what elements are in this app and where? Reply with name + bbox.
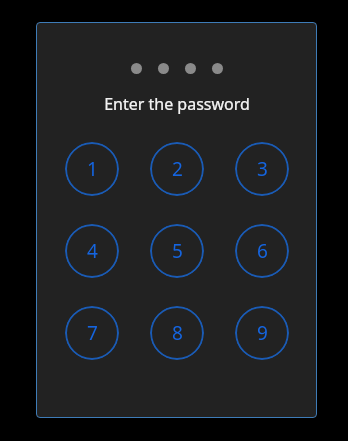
button[interactable]: 9 xyxy=(235,306,289,360)
staticText: 9 xyxy=(257,320,268,346)
staticText: 3 xyxy=(257,156,268,182)
button[interactable]: 5 xyxy=(150,224,204,278)
button[interactable]: 1 xyxy=(65,142,119,196)
button[interactable]: 3 xyxy=(235,142,289,196)
button[interactable]: 4 xyxy=(65,224,119,278)
staticText: 6 xyxy=(257,238,268,264)
staticText: Enter the password xyxy=(104,93,250,115)
button[interactable]: 7 xyxy=(65,306,119,360)
staticText: 4 xyxy=(87,238,98,264)
staticText: 1 xyxy=(87,156,98,182)
staticText: 8 xyxy=(172,320,183,346)
staticText: 5 xyxy=(172,238,183,264)
button[interactable]: 8 xyxy=(150,306,204,360)
staticText: 2 xyxy=(172,156,183,182)
button[interactable]: 6 xyxy=(235,224,289,278)
button[interactable]: 2 xyxy=(150,142,204,196)
staticText: 7 xyxy=(87,320,98,346)
